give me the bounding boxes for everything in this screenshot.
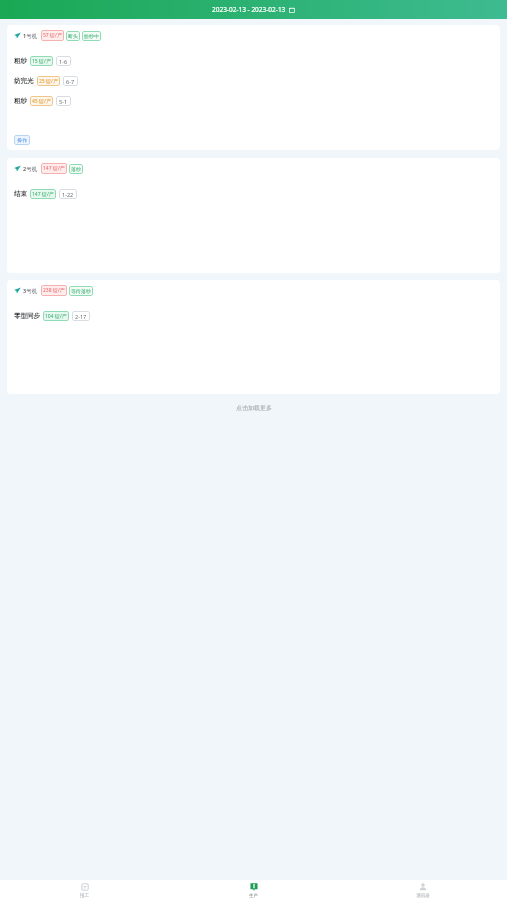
button[interactable]: 操作 bbox=[14, 135, 30, 145]
staticText: 2-17 bbox=[75, 313, 87, 319]
button[interactable]: 通讯录 bbox=[338, 880, 507, 900]
staticText: 结束 bbox=[14, 190, 27, 198]
button[interactable]: 3号机 bbox=[7, 280, 500, 394]
staticText: 15 锭/产 bbox=[32, 58, 51, 64]
staticText: 纺完光 bbox=[14, 77, 34, 85]
staticText: 104 锭/产 bbox=[45, 313, 67, 319]
staticText: 6-7 bbox=[66, 78, 75, 84]
button[interactable]: 报工 bbox=[0, 880, 169, 900]
staticText: 纺纱中 bbox=[84, 33, 99, 39]
staticText: 断头 bbox=[68, 33, 78, 39]
staticText: 粗纱 bbox=[14, 97, 27, 105]
button[interactable]: 2023-02-13 - 2023-02-13 bbox=[206, 3, 301, 16]
staticText: 操作 bbox=[17, 137, 27, 143]
staticText: 45 锭/产 bbox=[32, 98, 51, 104]
staticText: 2号机 bbox=[23, 165, 38, 173]
other: Pick date range bbox=[289, 7, 295, 13]
staticText: 报工 bbox=[80, 893, 89, 899]
button[interactable]: 点击加载更多 bbox=[0, 394, 507, 422]
staticText: 147 锭/产 bbox=[32, 191, 54, 197]
staticText: 3号机 bbox=[23, 287, 38, 295]
staticText: 5-1 bbox=[59, 98, 68, 104]
staticText: 通讯录 bbox=[416, 893, 430, 899]
staticText: 点击加载更多 bbox=[236, 404, 272, 412]
staticText: 粗纱 bbox=[14, 57, 27, 65]
button[interactable]: 2号机 bbox=[7, 158, 500, 273]
staticText: 1-22 bbox=[62, 191, 74, 197]
staticText: 等待落纱 bbox=[71, 288, 91, 294]
button[interactable]: 1号机 bbox=[7, 25, 500, 150]
staticText: 1-6 bbox=[59, 58, 68, 64]
staticText: 零型同步 bbox=[14, 312, 40, 320]
staticText: 落纱 bbox=[71, 166, 81, 172]
staticText: 57 锭/产 bbox=[43, 32, 62, 39]
staticText: 238 锭/产 bbox=[43, 287, 65, 294]
staticText: 1号机 bbox=[23, 32, 38, 40]
button[interactable]: 生产 bbox=[169, 880, 338, 900]
staticText: 2023-02-13 - 2023-02-13 bbox=[212, 5, 286, 14]
staticText: 25 锭/产 bbox=[39, 78, 58, 84]
staticText: 生产 bbox=[249, 893, 258, 899]
staticText: 147 锭/产 bbox=[43, 165, 65, 172]
